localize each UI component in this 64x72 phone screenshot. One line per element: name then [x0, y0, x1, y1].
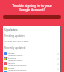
staticText: Updated today	[8, 54, 23, 56]
staticText: Updated today	[8, 59, 23, 61]
button[interactable]	[3, 15, 61, 19]
button[interactable]: Maps	[3, 51, 61, 56]
staticText: All apps are up to date	[4, 40, 29, 43]
staticText: Updated yesterday	[8, 69, 27, 71]
button[interactable]: Chrome	[3, 71, 61, 72]
button[interactable]: Drive	[3, 66, 61, 71]
button[interactable]: Photos	[3, 56, 61, 61]
staticText: Updates	[4, 27, 18, 32]
staticText: Photos	[8, 56, 17, 59]
staticText: Google Account?	[0, 7, 64, 11]
button[interactable]: Music	[3, 61, 61, 66]
button[interactable]: More options	[56, 62, 60, 66]
staticText: Drive	[8, 66, 15, 69]
staticText: Pending updates	[4, 34, 25, 38]
button[interactable]: More options	[56, 67, 60, 71]
staticText: Updated yesterday	[8, 64, 27, 66]
button[interactable]: More options	[56, 52, 60, 56]
staticText: Maps	[8, 51, 15, 54]
staticText: Trouble signing in to your	[0, 3, 64, 7]
staticText: Music	[8, 61, 15, 64]
button[interactable]: More options	[56, 57, 60, 61]
staticText: Recently updated	[4, 46, 26, 50]
